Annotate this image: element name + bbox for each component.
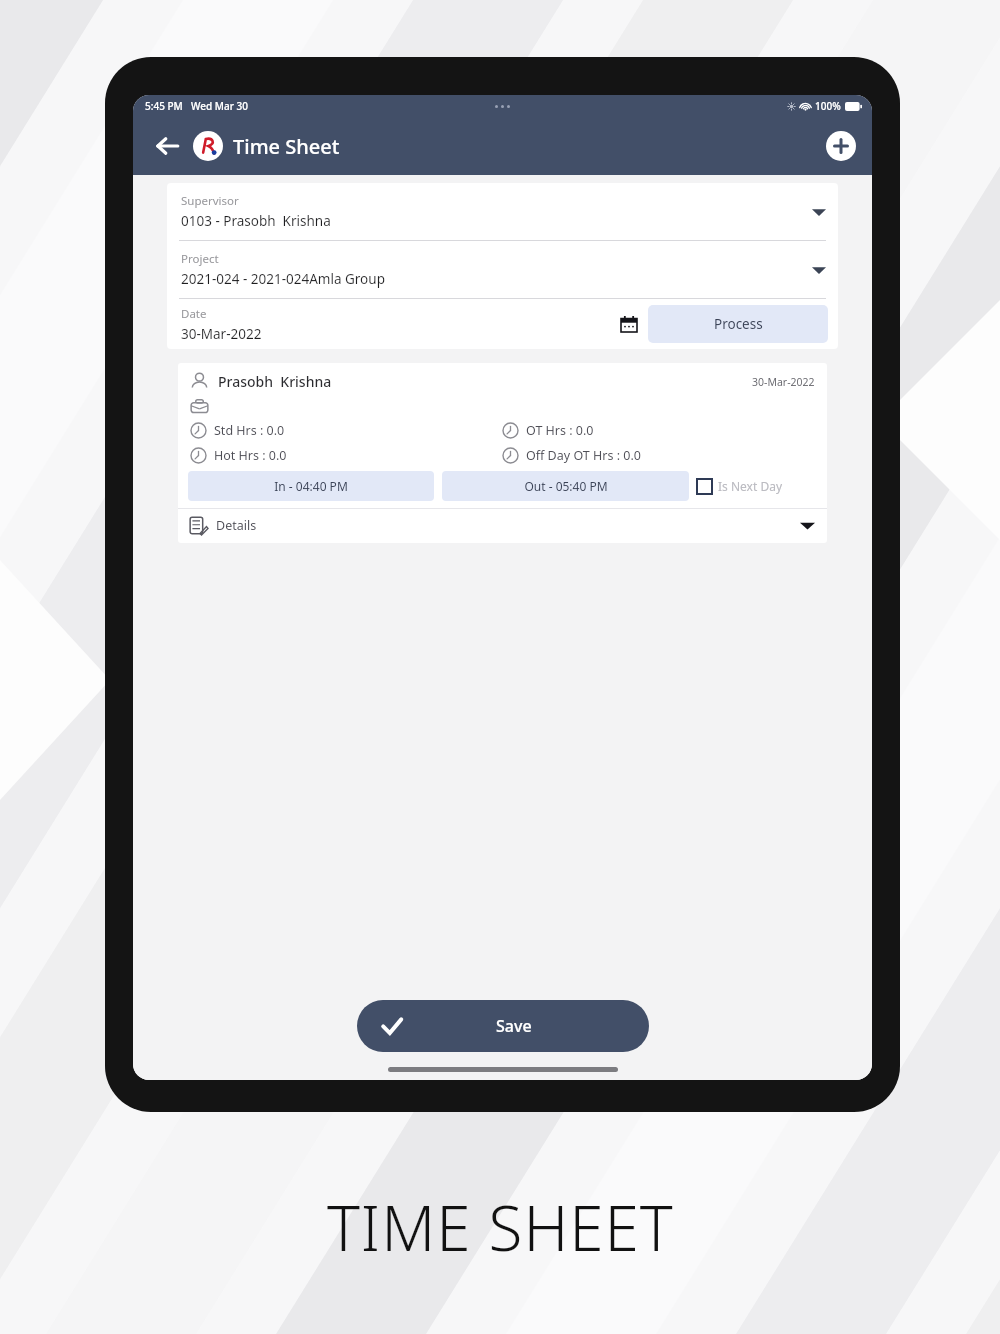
staticText: Off Day OT Hrs : 0.0 [526,447,641,464]
staticText: Project [181,251,219,267]
button[interactable]: Details [178,509,827,543]
staticText: 2021-024 - 2021-024Amla Group [181,270,385,288]
staticText: Save [496,1015,532,1037]
staticText: Is Next Day [718,478,782,494]
staticText: 30-Mar-2022 [181,325,262,343]
button[interactable]: Date [167,299,648,349]
staticText: Prasobh Krishna [218,372,332,391]
button[interactable]: Supervisor [167,183,838,240]
button[interactable]: In - 04:40 PM [188,471,434,501]
staticText: Details [216,517,257,534]
staticText: Hot Hrs : 0.0 [214,447,287,464]
button[interactable]: Save [357,1000,649,1052]
staticText: TIME SHEET [327,1185,674,1269]
staticText: Supervisor [181,193,239,209]
button[interactable]: Pick date [618,313,640,335]
staticText: Time Sheet [233,133,340,160]
button[interactable]: Process [648,305,828,343]
button[interactable]: Is Next Day [697,478,817,494]
staticText: OT Hrs : 0.0 [526,422,594,439]
button[interactable]: Add [826,131,856,161]
staticText: Date [181,306,207,322]
button[interactable]: Back [147,126,187,166]
staticText: Process [714,315,763,333]
staticText: 0103 - Prasobh Krishna [181,212,331,230]
staticText: Out - 05:40 PM [524,478,608,494]
staticText: 30-Mar-2022 [752,375,815,389]
button[interactable]: Out - 05:40 PM [442,471,689,501]
staticText: 100% [815,99,841,113]
staticText: 5:45 PM [145,99,183,113]
button[interactable]: Project [167,241,838,298]
staticText: Wed Mar 30 [191,99,248,113]
staticText: Std Hrs : 0.0 [214,422,285,439]
staticText: In - 04:40 PM [274,478,348,494]
